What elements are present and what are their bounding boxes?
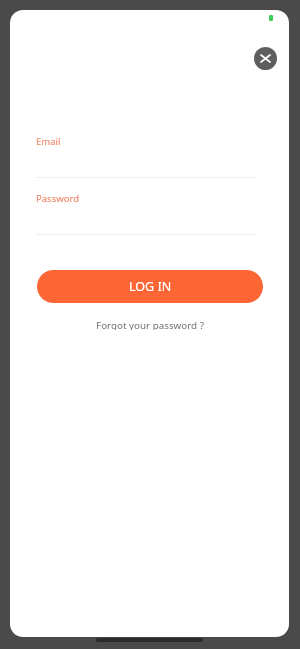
button[interactable]: Email (35, 131, 257, 178)
staticText: Forgot your password ? (96, 319, 204, 330)
button[interactable]: Forgot your password ? (96, 317, 204, 330)
button[interactable]: LOG IN (37, 270, 263, 303)
button[interactable]: Close (254, 47, 277, 70)
staticText: Email (36, 135, 61, 148)
staticText: Password (36, 192, 79, 205)
staticText: LOG IN (129, 278, 172, 295)
button[interactable]: Password (35, 188, 257, 235)
